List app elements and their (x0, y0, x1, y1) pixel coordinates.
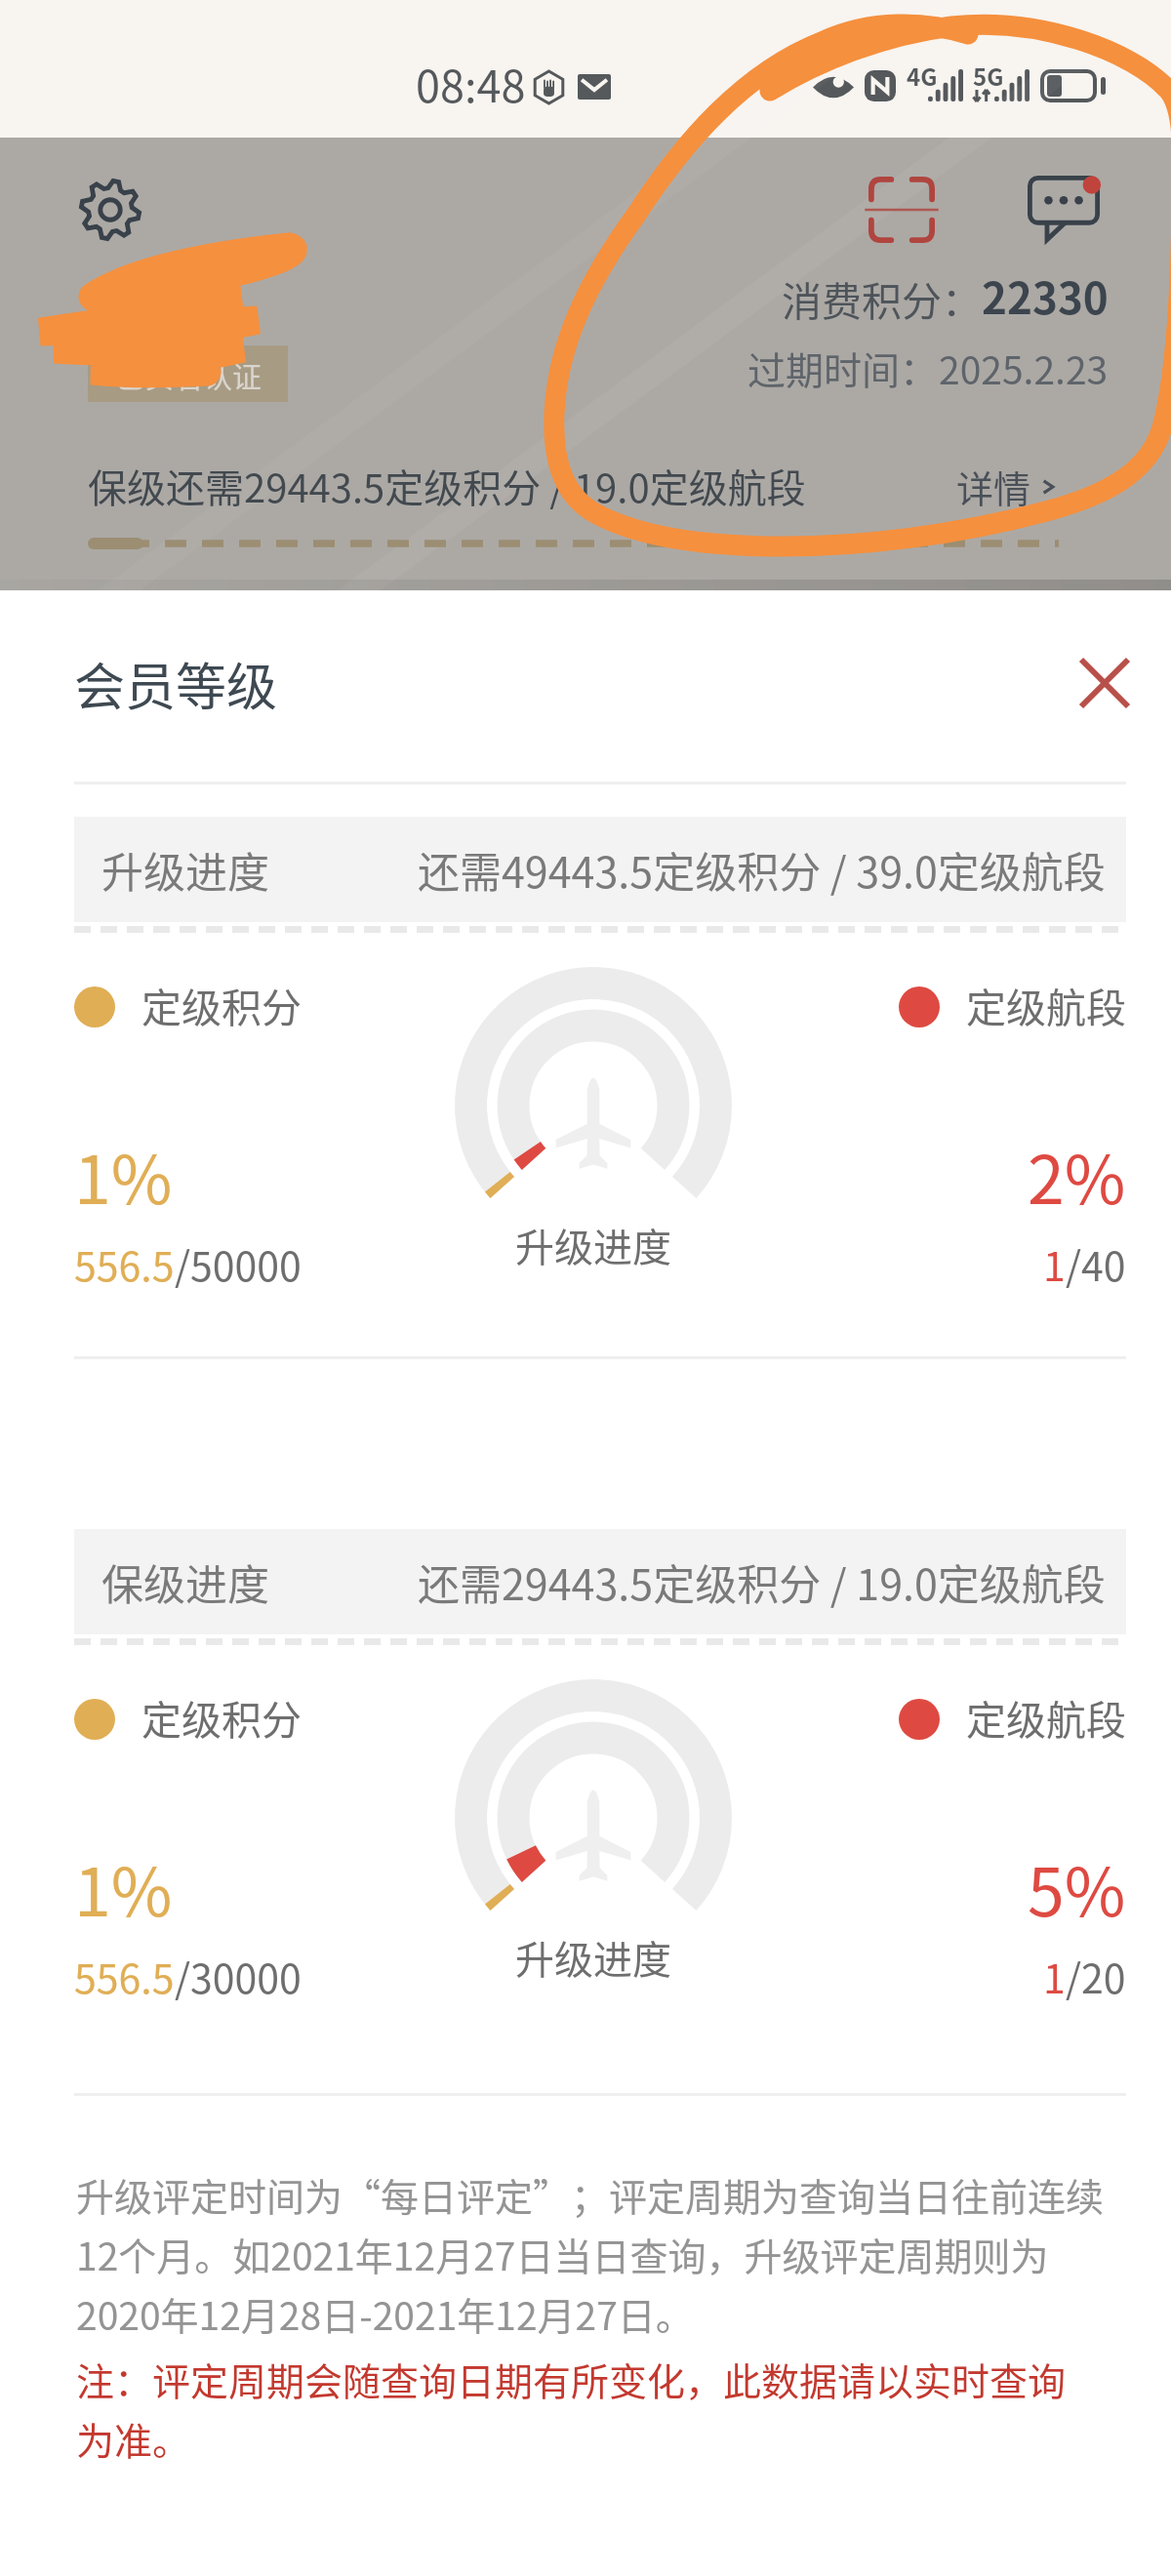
staticText: 1% (74, 1839, 173, 1935)
staticText: 升级评定时间为“每日评定”；评定周期为查询当日往前连续12个月。如2021年12… (76, 2167, 1128, 2341)
staticText: 保级还需29443.5定级积分 / 19.0定级航段 (88, 458, 806, 514)
staticText: 08:48 (416, 52, 526, 115)
staticText: 还需49443.5定级积分 / 39.0定级航段 (418, 839, 1106, 900)
staticText: 定级航段 (966, 1688, 1126, 1746)
staticText: 1 (1043, 1234, 1066, 1292)
staticText: 556.5 (74, 1234, 175, 1292)
button[interactable]: 详情 (956, 460, 1059, 513)
staticText: /30000 (175, 1947, 302, 2004)
staticText: 注：评定周期会随查询日期有所变化，此数据请以实时查询 为准。 (76, 2352, 1067, 2466)
staticText: /40 (1066, 1234, 1126, 1292)
staticText: 已实名认证 (115, 353, 262, 395)
button[interactable]: 会员等级 (74, 624, 1126, 742)
staticText: 升级进度 (515, 1929, 671, 1986)
staticText: 2025.2.23 (939, 341, 1109, 395)
staticText: 定级航段 (966, 976, 1126, 1033)
staticText: 过期时间： (747, 341, 939, 395)
button[interactable]: Close (1066, 644, 1144, 722)
staticText: 1% (74, 1127, 173, 1223)
button[interactable]: Settings (79, 179, 141, 241)
staticText: 保级进度 (101, 1551, 269, 1612)
staticText: 5G (973, 59, 1004, 93)
staticText: 会员等级 (74, 647, 278, 720)
staticText: 22330 (982, 264, 1109, 327)
staticText: /50000 (175, 1234, 302, 1292)
staticText: 定级积分 (141, 976, 302, 1033)
button[interactable]: Messages (1028, 176, 1100, 242)
staticText: 升级进度 (515, 1217, 671, 1273)
staticText: 1 (1043, 1947, 1066, 2004)
staticText: 消费积分： (782, 269, 982, 327)
staticText: 2% (1028, 1127, 1126, 1223)
staticText: 还需29443.5定级积分 / 19.0定级航段 (418, 1551, 1106, 1612)
staticText: /20 (1066, 1947, 1126, 2004)
staticText: 556.5 (74, 1947, 175, 2004)
staticText: 详情 (956, 460, 1031, 513)
staticText: 定级积分 (141, 1688, 302, 1746)
staticText: 升级进度 (101, 839, 269, 900)
staticText: 4G (907, 59, 938, 93)
staticText: 5% (1028, 1839, 1126, 1935)
button[interactable]: Scan QR code (868, 177, 935, 243)
